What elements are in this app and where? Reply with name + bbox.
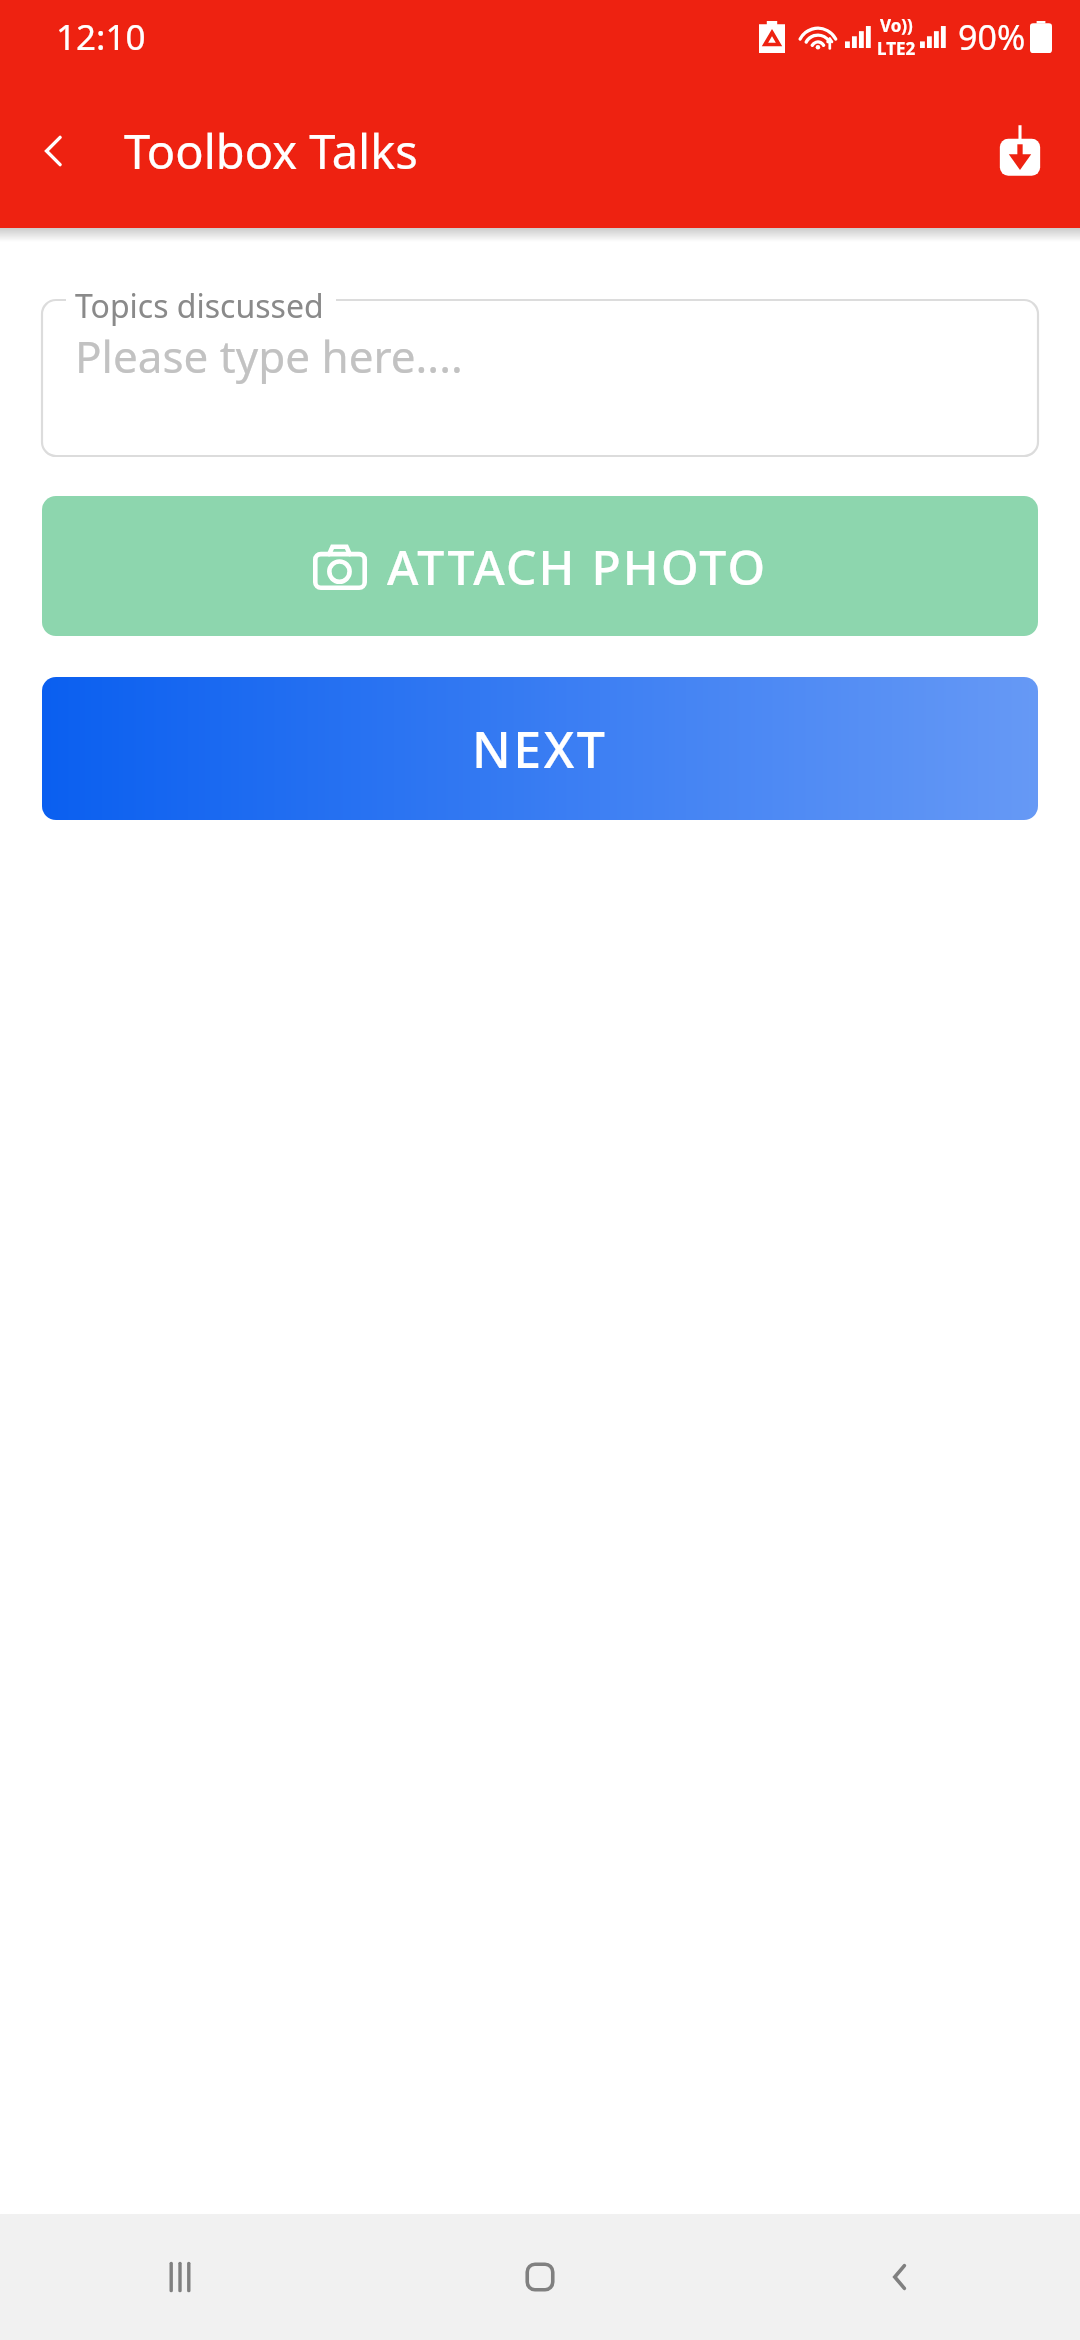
button[interactable]: Back <box>18 115 90 187</box>
staticText: LTE2 <box>877 37 916 60</box>
staticText: ATTACH PHOTO <box>387 534 768 599</box>
button[interactable]: ATTACH PHOTO <box>42 496 1038 636</box>
staticText: Toolbox Talks <box>124 119 418 183</box>
button[interactable]: Topics discussed <box>42 300 1038 456</box>
button[interactable]: Back <box>720 2214 1080 2340</box>
staticText: Topics discussed <box>75 284 324 328</box>
staticText: Please type here.... <box>75 326 463 386</box>
button[interactable]: Download <box>980 111 1060 191</box>
staticText: 12:10 <box>56 13 146 61</box>
button[interactable]: NEXT <box>42 677 1038 820</box>
staticText: 90% <box>958 14 1026 60</box>
button[interactable]: Recents <box>0 2214 360 2340</box>
button[interactable]: Home <box>360 2214 720 2340</box>
staticText: Vo)) <box>880 14 913 37</box>
staticText: NEXT <box>472 715 608 783</box>
